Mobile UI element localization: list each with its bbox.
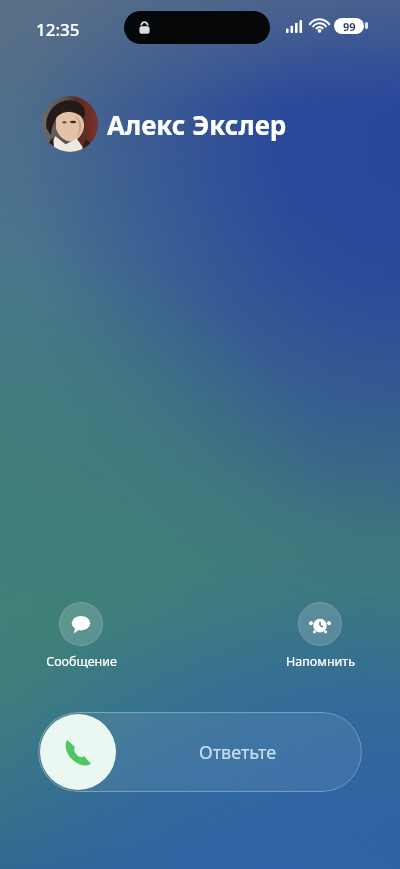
staticText: Напомнить: [286, 653, 355, 670]
staticText: 99: [343, 19, 356, 34]
staticText: 12:35: [36, 18, 80, 41]
staticText: Алекс Экслер: [107, 107, 287, 142]
button[interactable]: Сообщение: [31, 600, 131, 672]
staticText: Сообщение: [46, 653, 117, 670]
button[interactable]: Напомнить: [270, 600, 370, 672]
button[interactable]: Ответьте: [38, 712, 362, 792]
button[interactable]: Ответить: [40, 714, 116, 790]
staticText: Ответьте: [199, 740, 277, 765]
